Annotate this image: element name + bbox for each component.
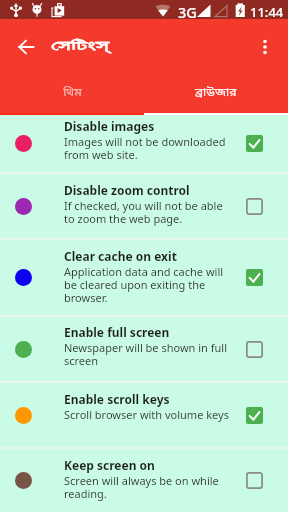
button[interactable]: Unchecked xyxy=(246,198,263,215)
button[interactable]: Enable scroll keys xyxy=(0,383,288,447)
button[interactable]: Checked xyxy=(246,269,263,286)
staticText: Screen will always be on while reading. xyxy=(64,473,229,502)
staticText: 3G xyxy=(178,2,197,21)
button[interactable]: Checked xyxy=(246,407,263,424)
staticText: Enable full screen xyxy=(64,324,170,340)
button[interactable]: থিম xyxy=(0,69,144,115)
button[interactable]: Clear cache on exit xyxy=(0,240,288,315)
staticText: Clear cache on exit xyxy=(64,248,177,264)
button[interactable]: Enable full screen xyxy=(0,317,288,381)
button[interactable]: Checked xyxy=(246,135,263,152)
staticText: Images will not be downloaded from web s… xyxy=(64,134,229,163)
staticText: থিম xyxy=(63,86,82,101)
staticText: 11:44 xyxy=(250,3,284,21)
staticText: সেটিংস্ xyxy=(51,39,109,55)
staticText: Scroll browser with volume keys xyxy=(64,407,229,422)
button[interactable]: More options xyxy=(250,32,280,62)
button[interactable]: Disable zoom control xyxy=(0,174,288,238)
staticText: ব্রাউজার xyxy=(195,86,237,101)
staticText: Disable zoom control xyxy=(64,182,190,198)
staticText: Application data and cache will be clear… xyxy=(64,264,229,306)
staticText: Newspaper will be shown in full screen xyxy=(64,340,229,369)
staticText: Disable images xyxy=(64,118,155,134)
staticText: Keep screen on xyxy=(64,457,155,473)
button[interactable]: Keep screen on xyxy=(0,449,288,512)
button[interactable]: Unchecked xyxy=(246,341,263,358)
button[interactable]: Disable images xyxy=(0,115,288,172)
button[interactable]: ব্রাউজার xyxy=(144,69,288,115)
button[interactable]: Unchecked xyxy=(246,472,263,489)
button[interactable]: Navigate up xyxy=(9,30,43,64)
staticText: If checked, you will not be able to zoom… xyxy=(64,198,229,227)
staticText: Enable scroll keys xyxy=(64,391,170,407)
